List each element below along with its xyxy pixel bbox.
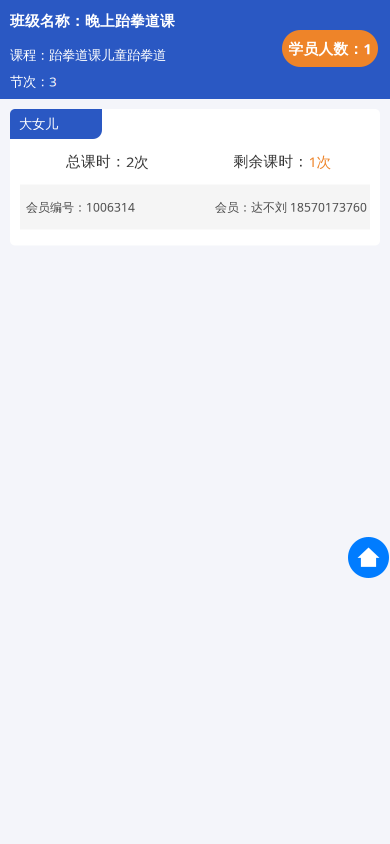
staticText: 2次 <box>126 152 149 171</box>
staticText: 课程：跆拳道课儿童跆拳道 <box>10 47 166 63</box>
button[interactable]: 学员人数：1 <box>282 30 378 67</box>
staticText: 班级名称：晚上跆拳道课 <box>10 12 175 30</box>
button[interactable]: Home <box>348 537 389 578</box>
staticText: 总课时： <box>66 153 126 171</box>
staticText: 会员：达不刘 18570173760 <box>215 199 367 215</box>
staticText: 学员人数：1 <box>288 39 371 58</box>
staticText: 大女儿 <box>19 116 58 132</box>
staticText: 会员编号：1006314 <box>26 199 135 215</box>
staticText: 节次：3 <box>10 72 57 90</box>
staticText: 剩余课时： <box>233 153 308 171</box>
staticText: 1次 <box>308 152 331 171</box>
